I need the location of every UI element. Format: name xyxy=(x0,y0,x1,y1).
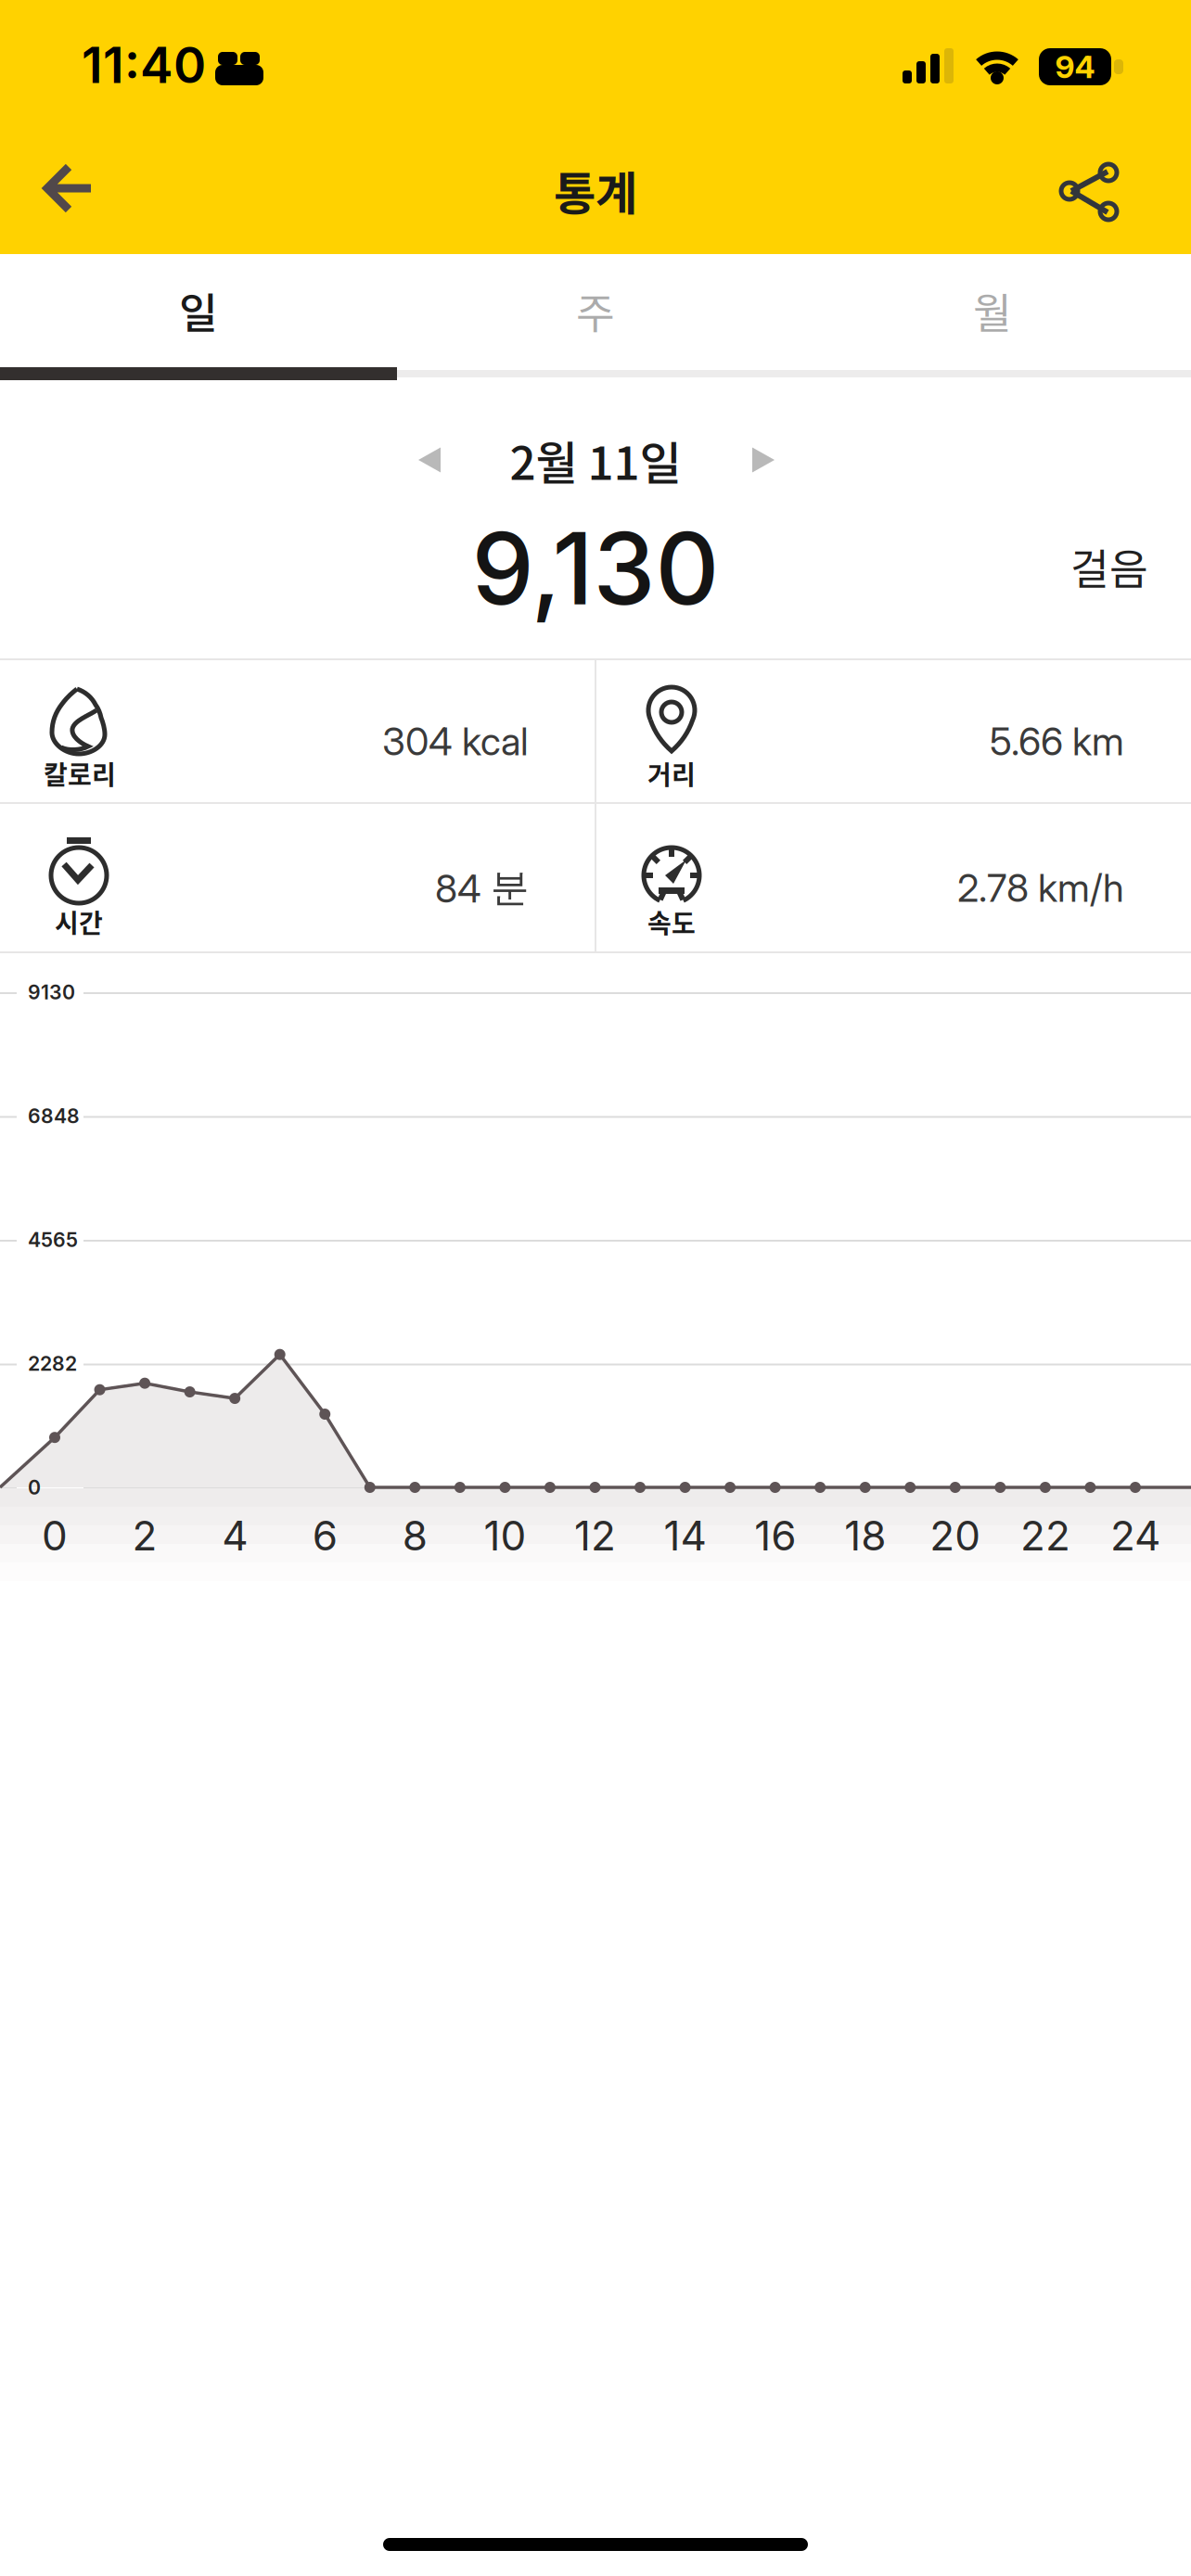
button[interactable] xyxy=(752,447,775,472)
staticText: 2월 11일 xyxy=(510,427,681,493)
button[interactable]: 주 xyxy=(397,254,794,367)
staticText: 8 xyxy=(402,1511,427,1560)
staticText: 2282 xyxy=(28,1352,77,1376)
staticText: 22 xyxy=(1020,1511,1070,1560)
staticText: 0 xyxy=(42,1511,68,1560)
staticText: 5.66 km xyxy=(990,718,1124,765)
staticText: 24 xyxy=(1110,1511,1160,1560)
staticText: 2.78 km/h xyxy=(957,865,1124,911)
button[interactable] xyxy=(43,163,95,213)
staticText: 10 xyxy=(484,1511,526,1560)
staticText: 9130 xyxy=(28,980,75,1004)
staticText: 거리 xyxy=(647,755,696,792)
staticText: 걸음 xyxy=(1070,536,1148,597)
staticText: 94 xyxy=(1055,48,1095,85)
staticText: 14 xyxy=(664,1511,706,1560)
button[interactable]: 일 xyxy=(0,254,397,367)
button[interactable]: 월 xyxy=(794,254,1191,367)
staticText: 시간 xyxy=(55,903,103,940)
staticText: 0 xyxy=(28,1475,41,1499)
staticText: 2 xyxy=(132,1511,157,1560)
staticText: 칼로리 xyxy=(44,755,116,792)
staticText: 일 xyxy=(179,280,218,341)
button[interactable] xyxy=(1059,164,1117,220)
staticText: 20 xyxy=(930,1511,981,1560)
staticText: 월 xyxy=(973,280,1012,341)
staticText: 11:40 xyxy=(82,35,206,95)
staticText: 4 xyxy=(222,1511,248,1560)
staticText: 6848 xyxy=(28,1104,80,1128)
button[interactable] xyxy=(418,447,441,472)
staticText: 12 xyxy=(574,1511,616,1560)
staticText: 9,130 xyxy=(472,509,719,628)
staticText: 304 kcal xyxy=(382,718,529,765)
staticText: 6 xyxy=(312,1511,337,1560)
staticText: 4565 xyxy=(28,1228,78,1252)
staticText: 18 xyxy=(844,1511,886,1560)
staticText: 16 xyxy=(754,1511,796,1560)
staticText: 속도 xyxy=(647,903,696,940)
staticText: 통계 xyxy=(554,157,637,223)
staticText: 84 분 xyxy=(435,864,529,912)
staticText: 주 xyxy=(576,280,615,341)
